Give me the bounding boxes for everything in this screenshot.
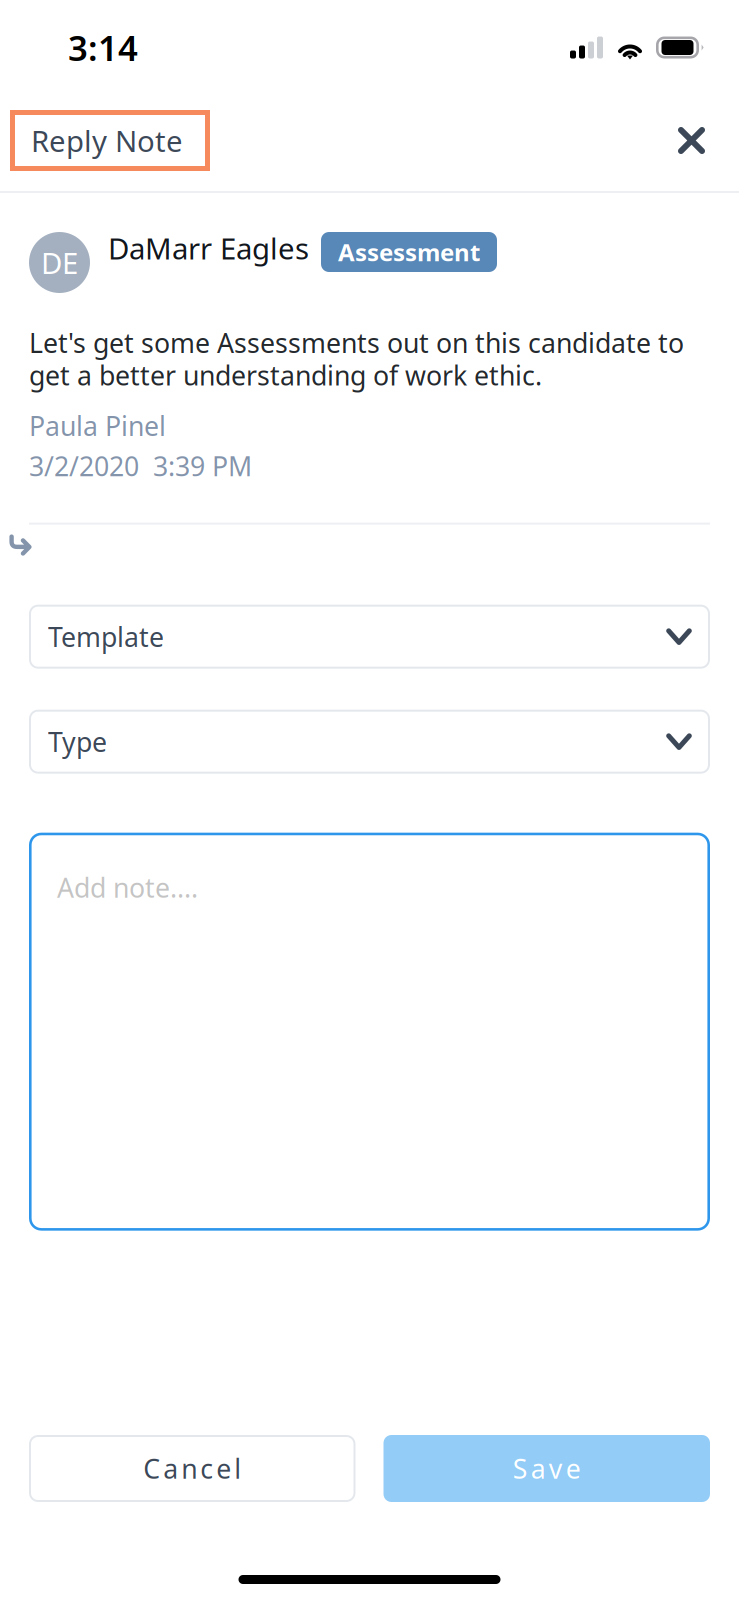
staticText: Type xyxy=(48,724,107,759)
staticText: Reply Note xyxy=(31,121,183,160)
staticText: Assessment xyxy=(338,236,480,268)
staticText: 3/2/2020 3:39 PM xyxy=(29,448,252,484)
button[interactable]: C a n c e l xyxy=(29,1435,355,1502)
button[interactable]: S a v e xyxy=(383,1435,710,1502)
button[interactable]: Template xyxy=(29,605,710,669)
button[interactable]: Reply Note xyxy=(10,110,210,171)
button[interactable]: Close xyxy=(668,117,715,164)
staticText: 3:14 xyxy=(68,24,138,70)
staticText: Template xyxy=(48,619,164,654)
staticText: C a n c e l xyxy=(143,1451,241,1486)
staticText: DaMarr Eagles xyxy=(108,228,309,267)
staticText: Paula Pinel xyxy=(29,408,166,443)
staticText: S a v e xyxy=(513,1451,581,1486)
staticText: Let's get some Assessments out on this c… xyxy=(29,325,684,393)
button[interactable]: Type xyxy=(29,710,710,774)
staticText: Add note.... xyxy=(57,870,198,905)
staticText: DE xyxy=(41,243,78,282)
